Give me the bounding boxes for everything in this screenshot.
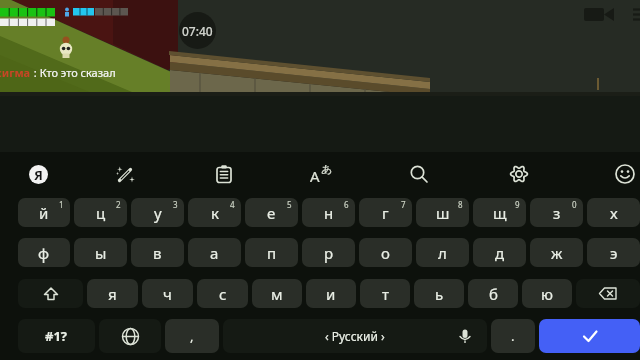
button[interactable]: й [18,198,70,227]
staticText: ‹ Русский › [325,328,385,344]
button[interactable]: Search [369,152,469,196]
staticText: ф [38,243,50,263]
button[interactable]: щ [473,198,526,227]
button[interactable]: н [302,198,355,227]
staticText: о [381,243,390,263]
button[interactable]: Magic [76,152,175,196]
button[interactable]: р [302,238,355,267]
staticText: 4 [230,199,235,210]
staticText: ц [96,203,106,223]
button[interactable]: ю [522,279,572,308]
button[interactable] [576,279,640,308]
button[interactable]: и [306,279,356,308]
staticText: ю [541,284,553,304]
staticText: ш [436,203,450,223]
staticText: л [438,243,447,263]
staticText: р [324,243,334,263]
staticText: 9 [515,199,520,210]
button[interactable]: ы [74,238,127,267]
staticText: с [219,284,227,304]
button[interactable]: л [416,238,469,267]
staticText: 5 [287,199,292,210]
button[interactable]: Menu [633,6,640,22]
staticText: м [271,284,283,304]
staticText: а [210,243,219,263]
button[interactable] [539,319,640,353]
button[interactable]: у [131,198,184,227]
button[interactable]: в [131,238,184,267]
staticText: ч [163,284,172,304]
button[interactable]: Yandex [0,152,76,196]
button[interactable]: к [188,198,241,227]
staticText: й [39,203,49,223]
button[interactable]: ь [414,279,464,308]
staticText: #1? [45,327,68,345]
staticText: 0 [572,199,577,210]
button[interactable]: э [587,238,640,267]
staticText: ж [551,243,563,263]
button[interactable]: о [359,238,412,267]
staticText: и [326,284,336,304]
button[interactable]: ф [18,238,70,267]
button[interactable]: ш [416,198,469,227]
staticText: сигма [0,65,31,80]
button[interactable]: Video [584,6,616,22]
staticText: э [610,243,618,263]
staticText: щ [493,203,507,223]
button[interactable]: з [530,198,583,227]
staticText: : Кто это сказал [31,65,116,80]
staticText: ы [95,243,107,263]
button[interactable]: . [491,319,535,353]
staticText: 6 [344,199,349,210]
staticText: у [154,203,162,223]
button[interactable]: #1? [18,319,95,353]
button[interactable]: п [245,238,298,267]
button[interactable]: т [360,279,410,308]
staticText: з [553,203,561,223]
button[interactable]: ц [74,198,127,227]
button[interactable]: ‹ Русский › [223,319,487,353]
staticText: в [153,243,162,263]
staticText: 7 [401,199,406,210]
button[interactable]: а [188,238,241,267]
staticText: 1 [59,199,64,210]
staticText: 8 [458,199,463,210]
staticText: я [108,284,117,304]
button[interactable]: Translate [272,152,369,196]
staticText: е [267,203,276,223]
button[interactable]: г [359,198,412,227]
staticText: . [511,327,515,345]
staticText: , [190,327,194,345]
staticText: д [495,243,505,263]
button[interactable]: ч [142,279,193,308]
button[interactable]: ж [530,238,583,267]
staticText: 2 [116,199,121,210]
button[interactable]: х [587,198,640,227]
button[interactable]: м [252,279,302,308]
button[interactable]: д [473,238,526,267]
button[interactable]: с [197,279,248,308]
button[interactable] [99,319,161,353]
button[interactable]: б [468,279,518,308]
staticText: т [382,284,389,304]
staticText: п [267,243,277,263]
staticText: г [382,203,389,223]
button[interactable] [18,279,83,308]
staticText: ь [435,284,444,304]
button[interactable]: Clipboard [175,152,272,196]
staticText: н [324,203,334,223]
button[interactable]: , [165,319,219,353]
button[interactable]: е [245,198,298,227]
staticText: Я [34,166,43,184]
button[interactable]: Emoji [610,152,640,196]
staticText: あ [321,162,333,176]
staticText: к [211,203,219,223]
staticText: 3 [173,199,178,210]
staticText: A [310,166,320,186]
button[interactable]: я [87,279,138,308]
staticText: х [610,203,618,223]
staticText: 07:40 [182,23,213,39]
staticText: б [489,284,498,304]
button[interactable]: Settings [469,152,569,196]
